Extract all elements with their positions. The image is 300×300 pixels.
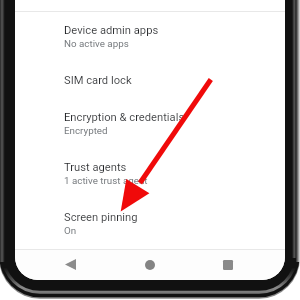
button[interactable]: Recents xyxy=(213,250,242,279)
button[interactable]: Trust agents xyxy=(15,149,285,199)
staticText: Trust agents xyxy=(64,161,127,174)
button[interactable]: Back xyxy=(56,250,85,279)
button[interactable]: Screen pinning xyxy=(15,199,285,249)
staticText: No active apps xyxy=(64,38,129,49)
button[interactable]: Device admin apps xyxy=(15,12,285,62)
staticText: Device admin apps xyxy=(64,24,159,37)
staticText: On xyxy=(64,225,77,236)
button[interactable]: SIM card lock xyxy=(15,62,285,99)
staticText: Encryption & credentials xyxy=(64,111,185,124)
button[interactable]: Encryption & credentials xyxy=(15,99,285,149)
staticText: 1 active trust agent xyxy=(64,175,148,186)
staticText: SIM card lock xyxy=(64,74,132,87)
button[interactable]: Home xyxy=(135,250,164,279)
staticText: Screen pinning xyxy=(64,211,138,224)
staticText: Encrypted xyxy=(64,125,108,136)
